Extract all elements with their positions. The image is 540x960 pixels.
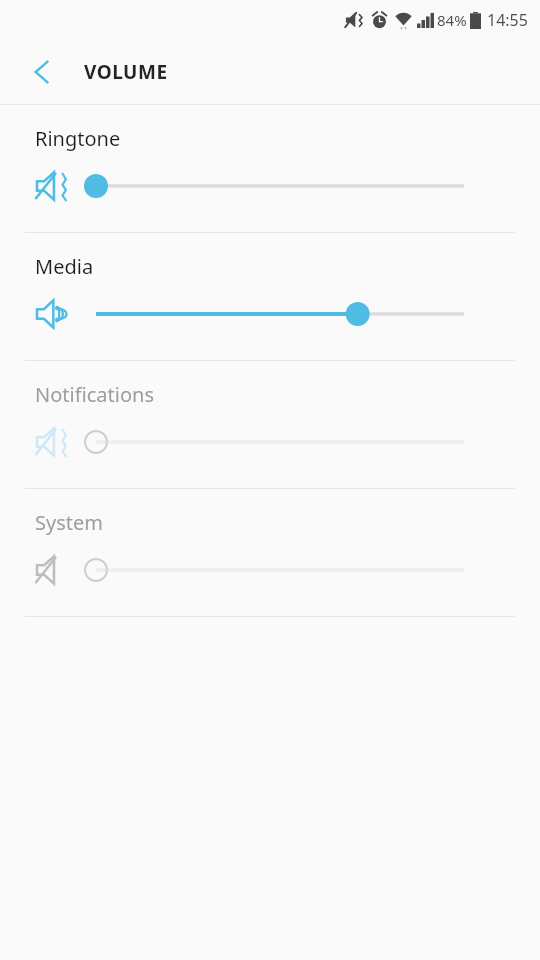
staticText: Media xyxy=(35,253,94,280)
button[interactable]: Notifications xyxy=(0,361,540,488)
button[interactable]: Ringtone xyxy=(0,105,540,232)
staticText: 14:55 xyxy=(487,9,528,31)
staticText: VOLUME xyxy=(84,59,168,85)
staticText: Notifications xyxy=(35,381,154,408)
staticText: Ringtone xyxy=(35,125,121,152)
staticText: 84% xyxy=(437,10,467,30)
button[interactable]: System xyxy=(0,489,540,616)
staticText: System xyxy=(35,509,103,536)
button[interactable]: Back xyxy=(18,48,66,96)
button[interactable]: Media xyxy=(0,233,540,360)
